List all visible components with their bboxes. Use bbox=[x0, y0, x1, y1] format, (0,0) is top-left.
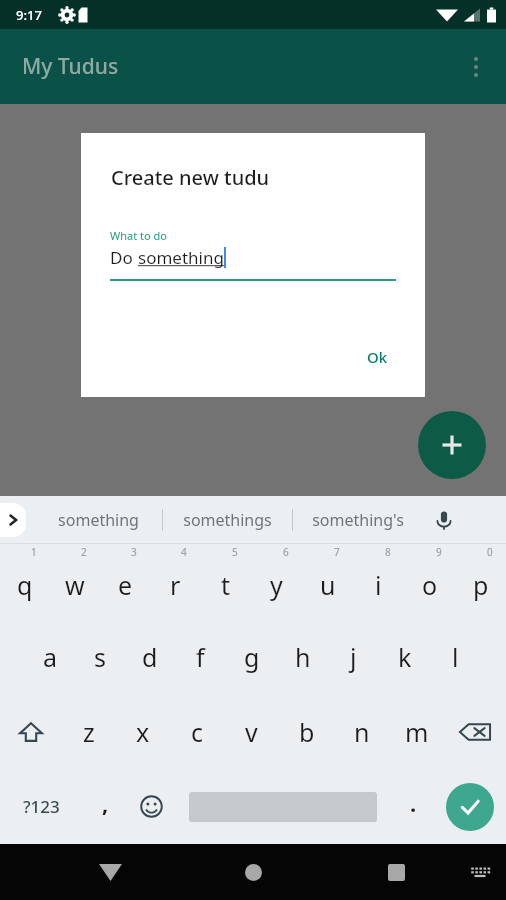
button[interactable]: v bbox=[224, 694, 279, 769]
staticText: something bbox=[58, 509, 139, 531]
staticText: 9 bbox=[436, 545, 442, 559]
staticText: 9:17 bbox=[16, 6, 42, 24]
button[interactable]: Ok bbox=[353, 338, 402, 376]
button[interactable]: More options bbox=[454, 45, 498, 89]
button[interactable]: l bbox=[430, 619, 481, 694]
staticText: z bbox=[83, 715, 95, 749]
staticText: Create new tudu bbox=[111, 164, 270, 191]
button[interactable]: n bbox=[334, 694, 389, 769]
staticText: 0 bbox=[487, 545, 493, 559]
button[interactable]: k bbox=[379, 619, 430, 694]
staticText: , bbox=[102, 788, 109, 818]
staticText: v bbox=[245, 715, 258, 749]
button[interactable]: z bbox=[62, 694, 116, 769]
staticText: h bbox=[295, 640, 311, 674]
button[interactable]: Voice input bbox=[422, 496, 466, 543]
staticText: g bbox=[244, 640, 260, 674]
button[interactable]: e bbox=[100, 544, 150, 619]
staticText: t bbox=[221, 568, 231, 602]
button[interactable]: r bbox=[150, 544, 200, 619]
button[interactable]: Add tudu bbox=[418, 411, 486, 479]
button[interactable]: Recent apps bbox=[372, 848, 420, 896]
button[interactable]: Emoji bbox=[128, 769, 174, 844]
staticText: My Tudus bbox=[22, 52, 119, 81]
staticText: o bbox=[422, 568, 438, 602]
staticText: Ok bbox=[367, 347, 388, 367]
staticText: m bbox=[405, 715, 429, 749]
staticText: i bbox=[375, 568, 382, 602]
button[interactable]: a bbox=[25, 619, 75, 694]
staticText: What to do bbox=[110, 228, 167, 243]
button[interactable]: s bbox=[75, 619, 125, 694]
staticText: j bbox=[350, 640, 357, 674]
button[interactable]: Enter bbox=[446, 783, 494, 831]
button[interactable]: Back bbox=[86, 848, 134, 896]
staticText: somethings bbox=[183, 509, 272, 531]
staticText: l bbox=[452, 640, 459, 674]
staticText: . bbox=[410, 788, 417, 818]
staticText: k bbox=[398, 640, 412, 674]
button[interactable]: Backspace bbox=[444, 694, 506, 769]
staticText: a bbox=[43, 640, 58, 674]
button[interactable]: q bbox=[0, 544, 50, 619]
staticText: r bbox=[170, 568, 181, 602]
button[interactable]: somethings bbox=[163, 496, 292, 543]
button[interactable]: Expand suggestions bbox=[0, 503, 26, 537]
staticText: n bbox=[354, 715, 370, 749]
staticText: w bbox=[65, 568, 85, 602]
button[interactable]: c bbox=[170, 694, 224, 769]
staticText: x bbox=[136, 715, 150, 749]
staticText: ?123 bbox=[23, 795, 60, 818]
button[interactable]: t bbox=[200, 544, 251, 619]
staticText: 2 bbox=[81, 545, 87, 559]
button[interactable]: Home bbox=[229, 848, 277, 896]
button[interactable]: something bbox=[34, 496, 162, 543]
staticText: 5 bbox=[232, 545, 238, 559]
button[interactable]: something's bbox=[293, 496, 422, 543]
button[interactable]: m bbox=[389, 694, 444, 769]
staticText: b bbox=[299, 715, 315, 749]
staticText: f bbox=[196, 640, 205, 674]
staticText: e bbox=[118, 568, 133, 602]
staticText: c bbox=[191, 715, 204, 749]
staticText: q bbox=[17, 568, 33, 602]
button[interactable]: Shift bbox=[0, 694, 62, 769]
button[interactable]: . bbox=[392, 769, 434, 844]
button[interactable]: Switch keyboard bbox=[460, 852, 500, 892]
button[interactable]: g bbox=[226, 619, 277, 694]
button[interactable]: u bbox=[302, 544, 353, 619]
button[interactable]: , bbox=[82, 769, 128, 844]
staticText: 1 bbox=[31, 545, 37, 559]
button[interactable]: p bbox=[455, 544, 506, 619]
staticText: p bbox=[473, 568, 489, 602]
staticText: 4 bbox=[181, 545, 187, 559]
staticText: y bbox=[270, 568, 283, 602]
button[interactable]: w bbox=[50, 544, 100, 619]
button[interactable]: j bbox=[328, 619, 379, 694]
button[interactable]: ?123 bbox=[0, 769, 82, 844]
button[interactable]: y bbox=[251, 544, 302, 619]
staticText: 6 bbox=[283, 545, 289, 559]
button[interactable]: o bbox=[404, 544, 455, 619]
staticText: u bbox=[320, 568, 336, 602]
button[interactable]: x bbox=[116, 694, 170, 769]
staticText: Do bbox=[110, 246, 138, 269]
button[interactable]: h bbox=[277, 619, 328, 694]
staticText: s bbox=[94, 640, 106, 674]
button[interactable]: b bbox=[279, 694, 334, 769]
staticText: something's bbox=[312, 509, 404, 531]
staticText: d bbox=[142, 640, 158, 674]
button[interactable]: d bbox=[125, 619, 175, 694]
staticText: 7 bbox=[334, 545, 340, 559]
button[interactable]: f bbox=[175, 619, 226, 694]
button[interactable]: i bbox=[353, 544, 404, 619]
staticText: 3 bbox=[131, 545, 137, 559]
staticText: something bbox=[138, 246, 224, 269]
staticText: 8 bbox=[385, 545, 391, 559]
